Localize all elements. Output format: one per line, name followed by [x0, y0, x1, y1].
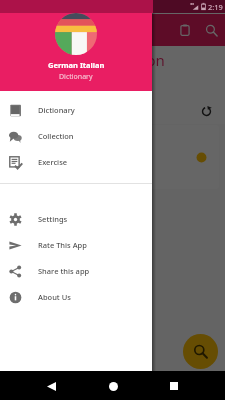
button[interactable]: Collection — [0, 123, 152, 149]
button[interactable]: Back — [41, 376, 61, 396]
staticText: Settings — [38, 214, 68, 224]
staticText: German Italian — [48, 60, 105, 70]
button[interactable]: Search — [198, 17, 224, 43]
button[interactable]: Favourite — [0, 125, 219, 189]
staticText: Information — [80, 50, 165, 70]
button[interactable]: Share this app — [0, 258, 152, 284]
button[interactable]: Exercise — [0, 149, 152, 175]
staticText: Share this app — [38, 266, 90, 276]
button[interactable]: Dictionary — [0, 97, 152, 123]
staticText: About Us — [38, 292, 71, 302]
button[interactable]: Information — [0, 46, 225, 124]
staticText: Exercise — [38, 157, 68, 167]
button[interactable]: Rate This App — [0, 232, 152, 258]
button[interactable]: Home — [103, 376, 123, 396]
button[interactable]: About Us — [0, 284, 152, 310]
staticText: 2:19 — [208, 2, 223, 12]
button[interactable]: Refresh — [198, 103, 214, 119]
button[interactable]: Search — [183, 334, 218, 369]
staticText: Dictionary — [38, 105, 75, 115]
button[interactable]: Recents — [164, 376, 184, 396]
staticText: Dictionary — [59, 72, 93, 82]
staticText: Collection — [38, 131, 74, 141]
button[interactable]: Settings — [0, 206, 152, 232]
button[interactable] — [0, 0, 225, 400]
button[interactable]: Favourite — [194, 150, 208, 164]
button[interactable]: Clipboard — [172, 17, 198, 43]
staticText: Rate This App — [38, 240, 87, 250]
